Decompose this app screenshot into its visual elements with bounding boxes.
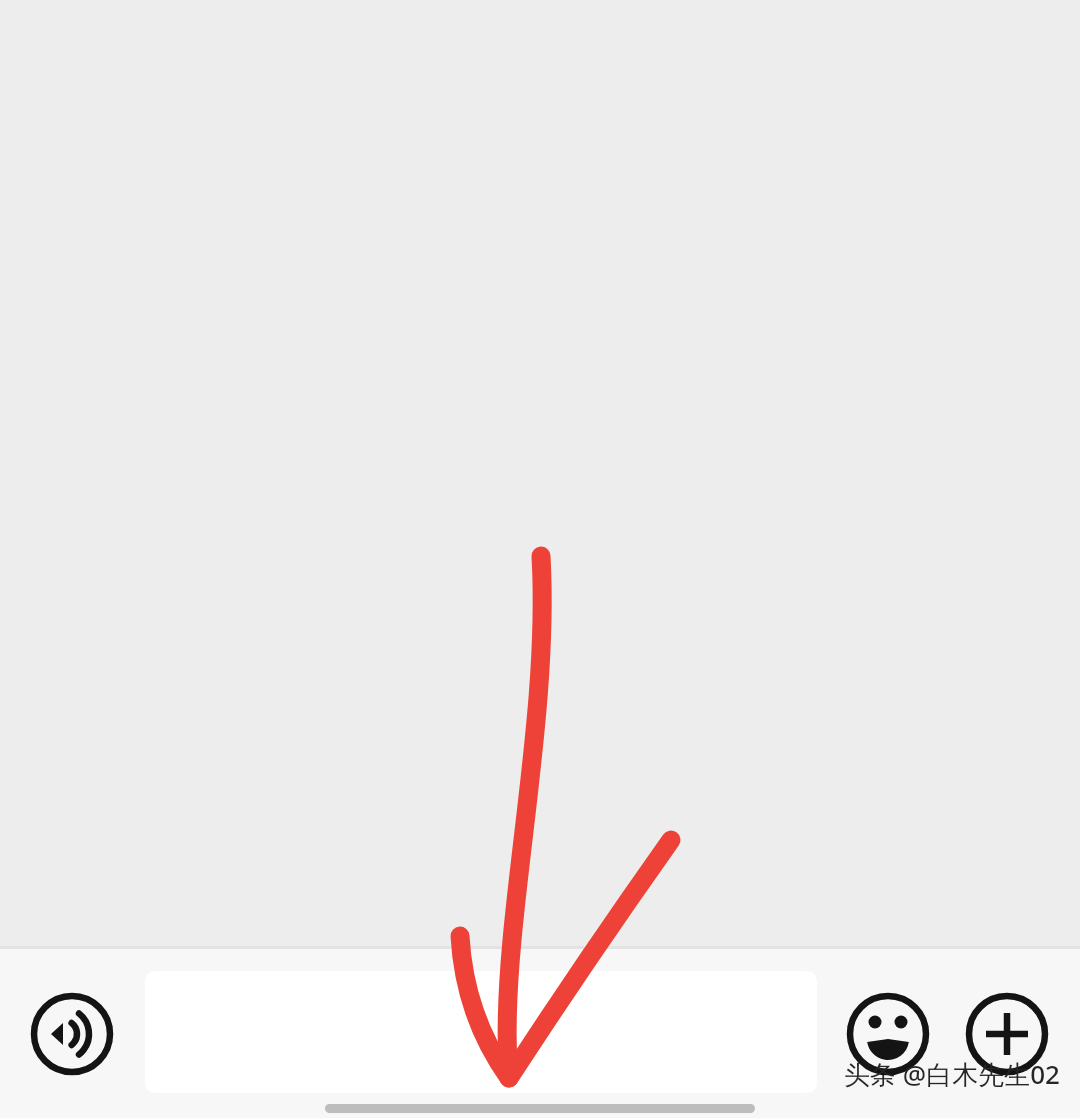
button[interactable]: Message input: [145, 971, 817, 1093]
button[interactable]: Voice message: [33, 995, 111, 1073]
button[interactable]: More: [968, 995, 1046, 1073]
button[interactable]: Emoji: [849, 995, 927, 1073]
staticText: 头条 @白木先生02: [844, 1056, 1060, 1092]
